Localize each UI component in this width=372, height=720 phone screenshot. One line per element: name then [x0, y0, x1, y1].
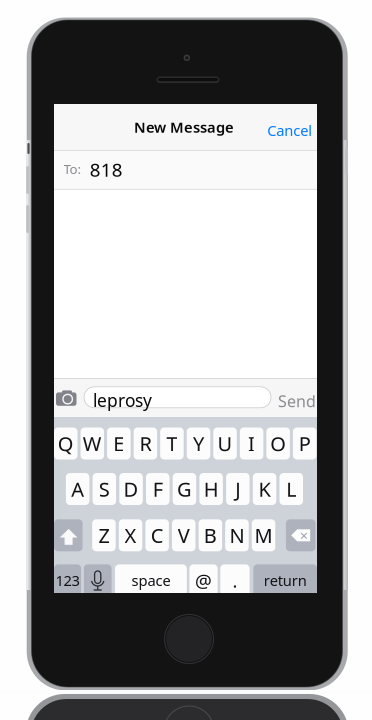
button[interactable]: space — [115, 564, 187, 596]
button[interactable]: X — [119, 519, 142, 551]
staticText: 123 — [55, 571, 79, 590]
staticText: @ — [195, 568, 212, 593]
staticText: A — [71, 476, 84, 502]
button[interactable]: Cancel — [261, 114, 318, 146]
button[interactable]: D — [119, 473, 143, 505]
staticText: 818 — [90, 157, 123, 182]
staticText: E — [113, 430, 124, 457]
button[interactable]: I — [240, 427, 263, 459]
button[interactable]: Camera — [56, 390, 76, 406]
staticText: Q — [58, 430, 74, 457]
staticText: . — [232, 568, 237, 593]
staticText: K — [259, 476, 271, 502]
button[interactable]: C — [145, 519, 169, 551]
button[interactable]: H — [199, 473, 223, 505]
button[interactable]: @ — [189, 564, 218, 596]
staticText: G — [177, 476, 192, 502]
staticText: H — [204, 476, 219, 502]
staticText: M — [255, 522, 273, 549]
button[interactable]: M — [252, 519, 275, 551]
button[interactable]: Z — [92, 519, 116, 551]
button[interactable]: Send — [276, 385, 318, 417]
button[interactable]: Dictation — [84, 564, 112, 596]
staticText: U — [218, 430, 233, 457]
staticText: P — [299, 430, 311, 457]
staticText: R — [139, 430, 151, 457]
staticText: space — [131, 571, 170, 590]
staticText: O — [270, 430, 286, 457]
button[interactable]: S — [93, 473, 116, 505]
button[interactable]: 123 — [54, 564, 81, 596]
staticText: return — [264, 571, 307, 590]
button[interactable]: A — [66, 473, 89, 505]
staticText: leprosy — [93, 389, 152, 412]
button[interactable]: N — [225, 519, 249, 551]
staticText: I — [248, 430, 255, 457]
button[interactable]: Q — [54, 427, 77, 459]
staticText: N — [229, 522, 244, 549]
staticText: To: — [63, 160, 81, 178]
button[interactable]: R — [134, 427, 157, 459]
button[interactable]: . — [220, 564, 250, 596]
staticText: D — [123, 476, 138, 502]
button[interactable]: J — [226, 473, 250, 505]
staticText: B — [204, 522, 217, 549]
staticText: W — [83, 430, 102, 457]
button[interactable]: W — [80, 427, 104, 459]
staticText: New Message — [134, 117, 234, 137]
staticText: F — [153, 476, 163, 502]
staticText: J — [235, 476, 240, 502]
staticText: Cancel — [267, 120, 312, 140]
button[interactable]: B — [199, 519, 222, 551]
button[interactable]: Shift — [54, 519, 83, 551]
button[interactable]: return — [253, 564, 317, 596]
staticText: X — [125, 522, 137, 549]
staticText: Send — [278, 390, 316, 412]
button[interactable]: L — [279, 473, 303, 505]
staticText: L — [286, 476, 296, 502]
staticText: V — [178, 522, 190, 549]
button[interactable]: Delete — [286, 519, 315, 551]
button[interactable]: T — [160, 427, 184, 459]
button[interactable]: Y — [187, 427, 210, 459]
staticText: C — [151, 522, 164, 549]
staticText: S — [99, 476, 110, 502]
button[interactable]: G — [173, 473, 196, 505]
staticText: Z — [98, 522, 109, 549]
button[interactable]: U — [213, 427, 237, 459]
button[interactable]: P — [293, 427, 316, 459]
button[interactable]: V — [172, 519, 195, 551]
staticText: Y — [193, 430, 204, 457]
staticText: T — [166, 430, 177, 457]
button[interactable]: O — [266, 427, 290, 459]
button[interactable]: E — [107, 427, 131, 459]
button[interactable]: K — [253, 473, 276, 505]
button[interactable]: F — [146, 473, 169, 505]
staticText: × — [300, 526, 308, 545]
